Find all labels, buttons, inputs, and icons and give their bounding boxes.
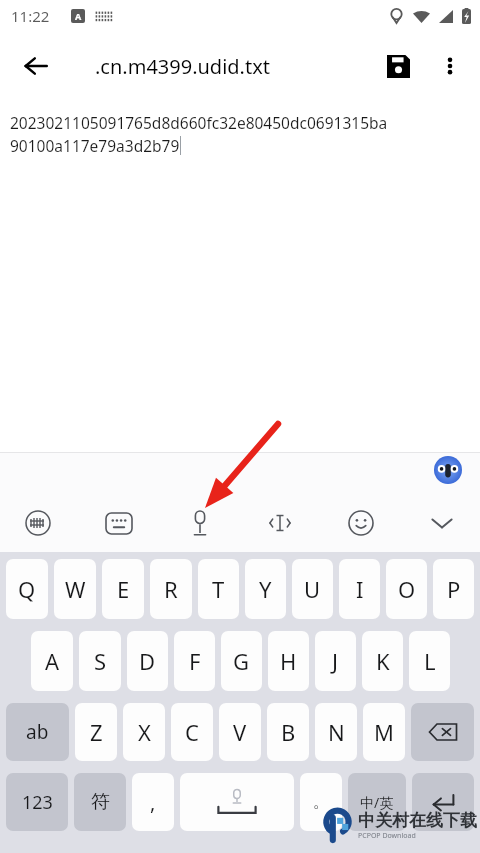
button[interactable]: Emoji — [339, 501, 383, 545]
staticText: U — [304, 574, 321, 604]
button[interactable]: T — [198, 559, 239, 619]
staticText: 123 — [22, 790, 53, 815]
button[interactable]: R — [150, 559, 192, 619]
staticText: 中/英 — [360, 793, 394, 812]
button[interactable]: X — [123, 703, 165, 761]
button[interactable]: A — [31, 631, 73, 691]
button[interactable]: 中/英 — [348, 773, 406, 831]
staticText: E — [117, 574, 130, 604]
staticText: 2023021105091765d8d660fc32e80450dc069131… — [10, 112, 388, 133]
staticText: H — [280, 646, 297, 676]
staticText: D — [139, 646, 156, 676]
staticText: T — [212, 574, 225, 604]
button[interactable]: S — [79, 631, 121, 691]
button[interactable]: Save — [374, 42, 422, 90]
button[interactable]: O — [386, 559, 427, 619]
button[interactable]: Voice input — [178, 501, 222, 545]
staticText: X — [138, 717, 151, 747]
button[interactable]: 。 — [300, 773, 342, 831]
staticText: G — [233, 646, 250, 676]
button[interactable]: U — [292, 559, 333, 619]
staticText: R — [164, 574, 178, 604]
button[interactable]: 123 — [6, 773, 68, 831]
staticText: P — [447, 574, 461, 604]
button[interactable]: N — [315, 703, 357, 761]
button[interactable]: V — [219, 703, 261, 761]
staticText: ab — [26, 719, 49, 745]
button[interactable]: 符 — [74, 773, 126, 831]
button[interactable]: , — [132, 773, 174, 831]
staticText: A — [45, 646, 60, 676]
button[interactable]: Z — [75, 703, 117, 761]
button[interactable]: L — [409, 631, 450, 691]
button[interactable]: F — [174, 631, 215, 691]
button[interactable]: Enter — [412, 773, 474, 831]
button[interactable]: Backspace — [411, 703, 474, 761]
staticText: 中关村在线下载 — [358, 810, 477, 831]
button[interactable]: Q — [6, 559, 48, 619]
staticText: 11:22 — [11, 6, 50, 26]
button[interactable]: K — [362, 631, 403, 691]
button[interactable]: More options — [426, 42, 474, 90]
staticText: S — [94, 646, 107, 676]
button[interactable]: C — [171, 703, 213, 761]
button[interactable]: W — [54, 559, 96, 619]
staticText: F — [189, 646, 201, 676]
staticText: L — [424, 646, 436, 676]
button[interactable]: I — [339, 559, 380, 619]
staticText: I — [356, 574, 364, 604]
staticText: .cn.m4399.udid.txt — [95, 53, 270, 80]
button[interactable]: E — [102, 559, 144, 619]
button[interactable]: Keyboard layout — [97, 501, 141, 545]
button[interactable]: Back — [12, 42, 60, 90]
button[interactable]: Input method — [16, 501, 60, 545]
staticText: 。 — [313, 792, 329, 812]
button[interactable]: D — [127, 631, 168, 691]
staticText: V — [233, 717, 247, 747]
button[interactable]: Move cursor — [258, 501, 302, 545]
button[interactable]: H — [268, 631, 309, 691]
staticText: 符 — [91, 790, 110, 814]
staticText: Q — [18, 574, 36, 604]
staticText: N — [328, 717, 345, 747]
staticText: C — [185, 717, 199, 747]
button[interactable]: Y — [245, 559, 286, 619]
button[interactable]: M — [363, 703, 405, 761]
staticText: K — [376, 646, 390, 676]
button[interactable]: Hide keyboard — [420, 501, 464, 545]
staticText: Y — [259, 574, 272, 604]
button[interactable]: Assistant — [434, 456, 462, 484]
staticText: , — [150, 789, 156, 816]
staticText: PCPOP Download — [358, 831, 416, 841]
button[interactable]: G — [221, 631, 262, 691]
staticText: M — [374, 717, 394, 747]
button[interactable]: J — [315, 631, 356, 691]
button[interactable]: Space — [180, 773, 294, 831]
button[interactable]: B — [267, 703, 309, 761]
button[interactable]: P — [433, 559, 474, 619]
staticText: B — [281, 717, 296, 747]
staticText: W — [65, 574, 86, 604]
staticText: Z — [90, 717, 103, 747]
staticText: J — [332, 646, 339, 676]
button[interactable]: ab — [6, 703, 69, 761]
staticText: O — [398, 574, 416, 604]
staticText: 90100a117e79a3d2b79 — [10, 135, 180, 156]
staticText: A — [75, 10, 82, 22]
